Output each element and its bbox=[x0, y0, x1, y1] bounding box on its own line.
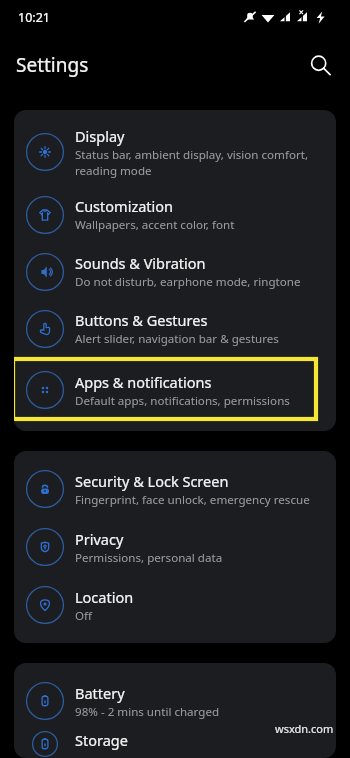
staticText: Customization bbox=[75, 196, 174, 216]
button[interactable]: Customization bbox=[14, 186, 336, 243]
button[interactable]: Storage bbox=[14, 730, 336, 758]
staticText: Buttons & Gestures bbox=[75, 310, 208, 330]
staticText: Storage bbox=[75, 730, 128, 750]
button[interactable]: Privacy bbox=[14, 518, 336, 576]
staticText: Apps & notifications bbox=[75, 372, 212, 392]
staticText: Sounds & Vibration bbox=[75, 253, 206, 273]
staticText: wsxdn.com bbox=[275, 721, 334, 736]
button[interactable]: Buttons & Gestures bbox=[14, 300, 336, 357]
button[interactable]: Search bbox=[300, 45, 340, 85]
staticText: Default apps, notifications, permissions bbox=[75, 393, 290, 409]
staticText: Display bbox=[75, 126, 125, 146]
button[interactable]: Battery bbox=[14, 672, 336, 730]
staticText: Wallpapers, accent color, font bbox=[75, 217, 235, 233]
button[interactable]: Sounds & Vibration bbox=[14, 243, 336, 300]
staticText: Do not disturb, earphone mode, ringtone bbox=[75, 274, 301, 290]
button[interactable]: Security & Lock Screen bbox=[14, 460, 336, 518]
button[interactable]: Apps & notifications bbox=[14, 360, 336, 420]
staticText: Security & Lock Screen bbox=[75, 471, 229, 491]
staticText: 10:21 bbox=[18, 9, 50, 26]
staticText: Settings bbox=[16, 52, 89, 78]
staticText: Fingerprint, face unlock, emergency resc… bbox=[75, 492, 310, 508]
staticText: Off bbox=[75, 608, 93, 624]
button[interactable]: Location bbox=[14, 576, 336, 634]
staticText: 98% - 2 mins until charged bbox=[75, 704, 220, 720]
staticText: Permissions, personal data bbox=[75, 550, 223, 566]
staticText: Location bbox=[75, 587, 134, 607]
staticText: Battery bbox=[75, 683, 125, 703]
button[interactable]: Display bbox=[14, 118, 336, 186]
staticText: Alert slider, navigation bar & gestures bbox=[75, 331, 279, 347]
staticText: Status bar, ambient display, vision comf… bbox=[75, 147, 309, 179]
staticText: Privacy bbox=[75, 529, 124, 549]
